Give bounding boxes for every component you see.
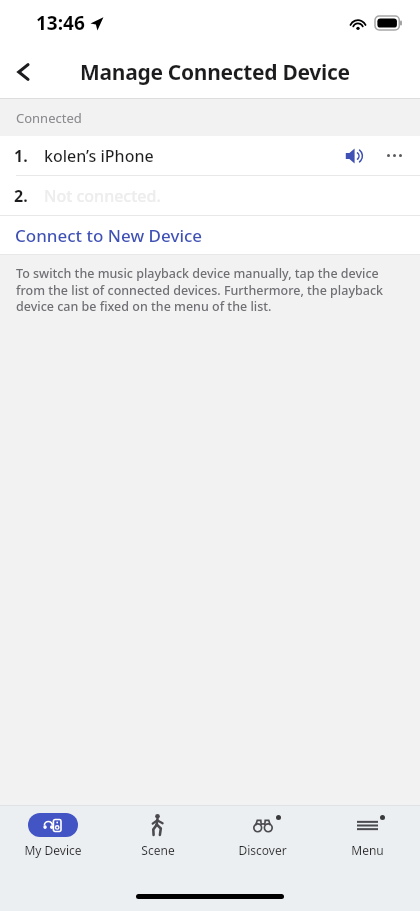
staticText: Scene bbox=[141, 842, 175, 858]
staticText: Menu bbox=[351, 842, 384, 858]
staticText: Connected bbox=[16, 109, 82, 127]
staticText: 1. bbox=[14, 145, 28, 167]
staticText: 13:46 bbox=[36, 10, 85, 36]
button[interactable]: Back bbox=[0, 48, 48, 96]
button[interactable]: Discover bbox=[210, 806, 315, 868]
staticText: 2. bbox=[14, 185, 28, 207]
button[interactable]: My Device bbox=[0, 806, 105, 868]
button[interactable]: Menu bbox=[315, 806, 420, 868]
button[interactable]: 1. bbox=[0, 136, 420, 175]
staticText: kolen’s iPhone bbox=[44, 145, 336, 167]
staticText: Not connected. bbox=[44, 185, 161, 207]
button[interactable]: More options bbox=[374, 136, 414, 175]
staticText: Manage Connected Device bbox=[80, 58, 350, 87]
button[interactable]: Scene bbox=[105, 806, 210, 868]
staticText: To switch the music playback device manu… bbox=[16, 265, 400, 314]
button[interactable]: 2. bbox=[0, 176, 420, 215]
staticText: Discover bbox=[238, 842, 287, 858]
button[interactable]: Connect to New Device bbox=[0, 216, 420, 254]
staticText: My Device bbox=[24, 842, 82, 858]
button[interactable]: Volume bbox=[336, 137, 374, 175]
staticText: Connect to New Device bbox=[15, 224, 203, 247]
